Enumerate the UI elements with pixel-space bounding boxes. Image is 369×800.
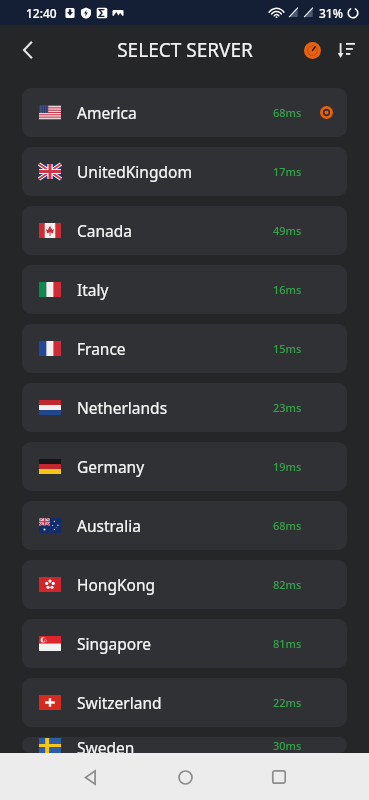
button[interactable]: Canada [22,206,347,255]
button[interactable]: Sort [329,33,363,67]
button[interactable]: Sweden [22,737,347,753]
staticText: 68ms [273,105,302,120]
staticText: Sweden [77,737,135,753]
button[interactable]: Back [8,30,48,70]
button[interactable]: Switzerland [22,678,347,727]
staticText: SELECT SERVER [117,37,253,63]
staticText: 19ms [273,459,302,474]
button[interactable]: Germany [22,442,347,491]
button[interactable]: Singapore [22,619,347,668]
staticText: 31% [319,5,343,21]
button[interactable]: Australia [22,501,347,550]
button[interactable]: UnitedKingdom [22,147,347,196]
staticText: Switzerland [77,692,162,713]
staticText: America [77,102,137,123]
button[interactable]: Italy [22,265,347,314]
button[interactable]: Recent apps [257,755,301,799]
staticText: 23ms [273,400,302,415]
staticText: France [77,338,126,359]
button[interactable]: Back [69,755,113,799]
staticText: Singapore [77,633,152,654]
staticText: Netherlands [77,397,168,418]
button[interactable]: Speed test [295,33,329,67]
staticText: Canada [77,220,132,241]
button[interactable]: HongKong [22,560,347,609]
staticText: 49ms [273,223,302,238]
staticText: 12:40 [26,5,57,21]
staticText: 30ms [273,738,302,753]
button[interactable]: Netherlands [22,383,347,432]
staticText: HongKong [77,574,156,595]
staticText: Italy [77,279,109,300]
button[interactable]: Home [163,755,207,799]
staticText: Germany [77,456,145,477]
staticText: 82ms [273,577,302,592]
staticText: UnitedKingdom [77,161,192,182]
staticText: 22ms [273,695,302,710]
staticText: 68ms [273,518,302,533]
staticText: 17ms [273,164,302,179]
staticText: 15ms [273,341,302,356]
button[interactable]: America [22,88,347,137]
staticText: 16ms [273,282,302,297]
button[interactable]: France [22,324,347,373]
staticText: Australia [77,515,141,536]
staticText: 81ms [273,636,302,651]
